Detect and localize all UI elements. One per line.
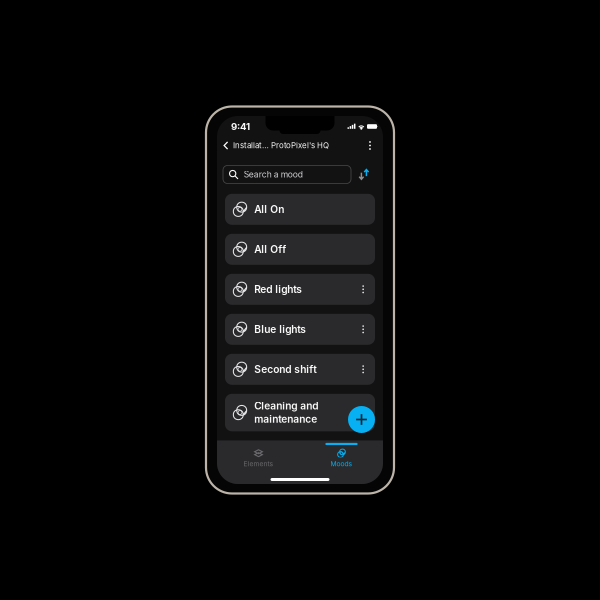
button[interactable]: Cleaning and (225, 394, 375, 431)
staticText: Search a mood (244, 169, 303, 180)
button[interactable]: Moods (300, 441, 383, 484)
staticText: All Off (254, 243, 286, 255)
staticText: ProtoPixel's HQ (271, 141, 329, 150)
staticText: Installat… (233, 141, 269, 150)
staticText: Red lights (254, 283, 302, 295)
button[interactable]: Installat… (217, 138, 273, 153)
button[interactable]: Elements (217, 441, 300, 484)
button[interactable]: Second shift (225, 354, 375, 385)
button[interactable]: All On (225, 194, 375, 225)
staticText: 9:41 (231, 121, 250, 132)
staticText: maintenance (254, 413, 317, 425)
staticText: Second shift (254, 363, 317, 375)
staticText: Blue lights (254, 323, 306, 335)
button[interactable]: All Off (225, 234, 375, 265)
button[interactable]: Blue lights (225, 314, 375, 345)
button[interactable]: Red lights (225, 274, 375, 305)
staticText: All On (254, 203, 284, 215)
button[interactable]: More options (362, 137, 383, 153)
button[interactable]: Add mood (348, 406, 375, 433)
staticText: Elements (243, 460, 273, 468)
staticText: Moods (330, 460, 352, 468)
staticText: Cleaning and (254, 400, 318, 412)
button[interactable]: Sort (358, 168, 370, 180)
